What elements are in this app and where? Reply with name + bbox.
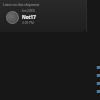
staticText: bm20XB xyxy=(22,9,35,13)
staticText: Listen to this shipment xyxy=(3,2,40,7)
button[interactable]: Scroll indicator xyxy=(92,90,100,93)
button[interactable]: Contact avatar xyxy=(6,11,19,24)
button[interactable]: Listen to this shipment xyxy=(0,0,86,32)
staticText: Not17 xyxy=(22,14,36,20)
button[interactable]: Scroll indicator xyxy=(92,74,100,77)
button[interactable]: Scroll indicator xyxy=(92,66,100,69)
button[interactable]: Scroll indicator xyxy=(92,82,100,85)
button[interactable]: bm20XB xyxy=(22,9,86,25)
staticText: 3:09 PM xyxy=(22,21,34,25)
